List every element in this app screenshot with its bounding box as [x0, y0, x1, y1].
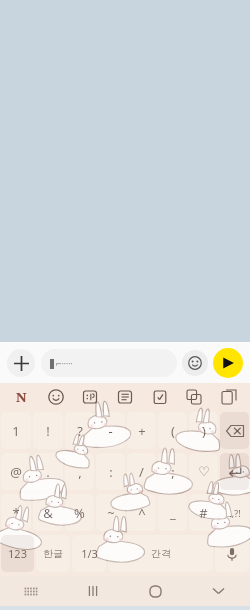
button[interactable]: ⌐·····	[41, 349, 177, 377]
staticText: .	[46, 463, 50, 481]
staticText: +	[138, 422, 146, 440]
button[interactable]: @	[1, 453, 31, 490]
staticText: N	[16, 388, 27, 406]
staticText: *	[12, 504, 20, 522]
button[interactable]: Text templates	[112, 384, 138, 410]
staticText: 간격	[151, 547, 171, 560]
button[interactable]: Microphone	[215, 535, 249, 572]
button[interactable]: 한글	[36, 535, 70, 572]
staticText: (	[171, 422, 175, 440]
staticText: #	[199, 504, 208, 522]
button[interactable]: Recent apps	[62, 576, 124, 606]
button[interactable]: 123	[1, 535, 34, 572]
staticText: 1/3	[81, 546, 98, 561]
staticText: !	[46, 422, 50, 440]
staticText: :	[109, 463, 113, 481]
button[interactable]: Naver	[8, 384, 34, 410]
staticText: @	[10, 463, 22, 481]
staticText: 한글	[43, 547, 63, 560]
button[interactable]: .	[33, 453, 63, 490]
button[interactable]: 간격	[108, 535, 213, 572]
button[interactable]: Emoji	[182, 350, 208, 376]
button[interactable]: ;	[158, 453, 187, 490]
button[interactable]: %	[65, 494, 94, 531]
staticText: )	[202, 422, 206, 440]
button[interactable]: -	[96, 412, 125, 449]
button[interactable]: Backspace	[220, 412, 249, 449]
button[interactable]: Send	[213, 348, 243, 378]
button[interactable]: .,?!	[220, 494, 249, 531]
staticText: %	[74, 504, 85, 522]
button[interactable]: #	[189, 494, 218, 531]
button[interactable]: 1	[1, 412, 31, 449]
button[interactable]: Emoticon	[43, 384, 69, 410]
button[interactable]: ♡	[189, 453, 218, 490]
staticText: 1	[12, 422, 20, 440]
button[interactable]: Emoji text	[77, 384, 103, 410]
button[interactable]: ?	[65, 412, 94, 449]
button[interactable]: +	[127, 412, 156, 449]
button[interactable]: Keyboard settings	[0, 576, 62, 606]
button[interactable]: Home	[124, 576, 187, 606]
button[interactable]: Enter	[220, 453, 249, 490]
button[interactable]: :	[96, 453, 125, 490]
staticText: .,?!	[229, 507, 241, 519]
button[interactable]: ~	[96, 494, 125, 531]
staticText: _	[170, 504, 176, 522]
staticText: ~	[107, 504, 115, 522]
button[interactable]: Copy	[216, 384, 242, 410]
staticText: &	[43, 504, 53, 522]
button[interactable]: Clipboard	[147, 384, 173, 410]
button[interactable]: &	[33, 494, 63, 531]
staticText: ?	[77, 422, 83, 440]
button[interactable]: ,	[65, 453, 94, 490]
button[interactable]: Translate	[181, 384, 207, 410]
staticText: ♡	[198, 464, 210, 479]
button[interactable]: )	[189, 412, 218, 449]
button[interactable]: _	[158, 494, 187, 531]
button[interactable]: /	[127, 453, 156, 490]
staticText: /	[139, 463, 144, 481]
staticText: -	[108, 422, 113, 440]
button[interactable]: Add attachment	[7, 349, 35, 377]
button[interactable]: (	[158, 412, 187, 449]
staticText: ,	[78, 463, 82, 481]
button[interactable]: Hide keyboard	[187, 576, 250, 606]
button[interactable]: !	[33, 412, 63, 449]
button[interactable]: *	[1, 494, 31, 531]
staticText: ^	[138, 504, 146, 522]
staticText: ⌐·····	[55, 358, 73, 369]
staticText: 123	[8, 546, 27, 561]
button[interactable]: ^	[127, 494, 156, 531]
staticText: ;	[171, 463, 175, 481]
button[interactable]: 1/3	[72, 535, 106, 572]
